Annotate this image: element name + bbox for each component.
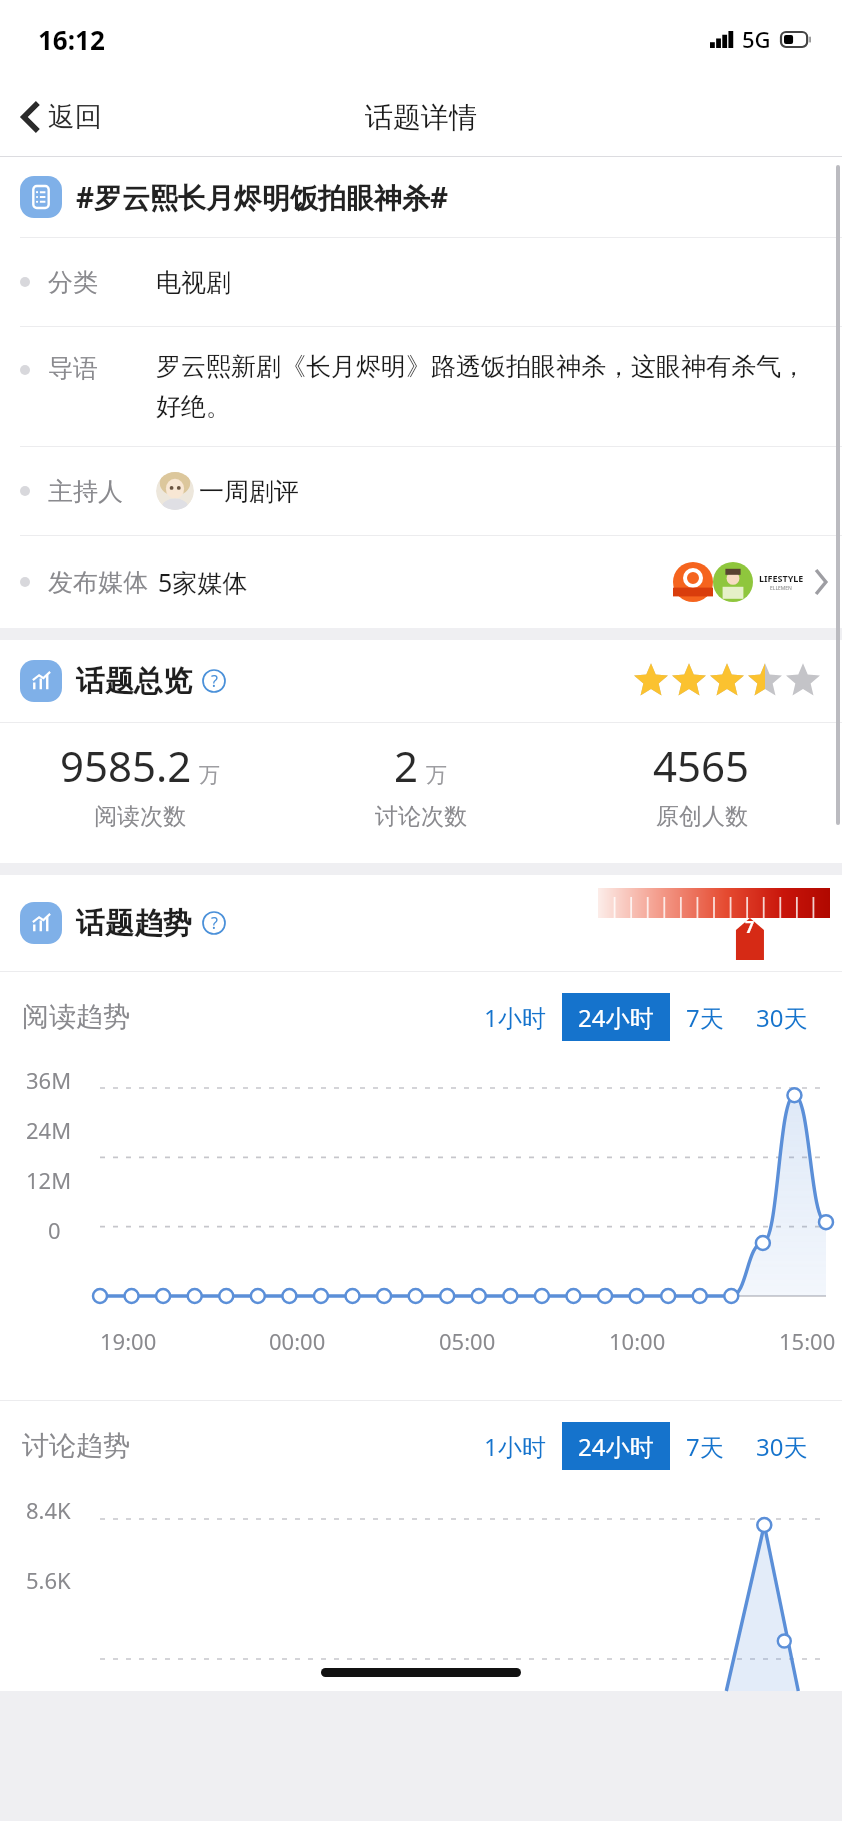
button[interactable]: 帮助说明 — [202, 669, 226, 693]
button[interactable]: 主持人 — [0, 447, 842, 535]
staticText: 主持人 — [48, 476, 123, 507]
staticText: ? — [211, 670, 218, 692]
staticText: 00:00 — [269, 1326, 326, 1356]
button[interactable]: 24小时 — [562, 993, 670, 1041]
button[interactable]: #罗云熙长月烬明饭拍眼神杀# — [0, 157, 842, 237]
staticText: 2 — [394, 737, 419, 794]
staticText: 5家媒体 — [158, 565, 248, 599]
staticText: 30天 — [756, 1001, 808, 1034]
button[interactable]: 7天 — [670, 1422, 740, 1470]
button[interactable]: 30天 — [740, 993, 824, 1041]
staticText: 罗云熙新剧《长月烬明》路透饭拍眼神杀，这眼神有杀气，好绝。 — [156, 351, 820, 422]
staticText: 话题趋势 — [76, 905, 192, 942]
staticText: #罗云熙长月烬明饭拍眼神杀# — [76, 178, 449, 216]
staticText: 5G — [742, 24, 771, 54]
staticText: 9585.2 — [60, 737, 192, 794]
staticText: ? — [211, 912, 218, 934]
staticText: 阅读趋势 — [22, 1000, 130, 1034]
button[interactable]: 30天 — [740, 1422, 824, 1470]
staticText: 24M — [26, 1115, 72, 1145]
button[interactable]: 帮助说明 — [202, 911, 226, 935]
staticText: 分类 — [48, 267, 98, 298]
button[interactable]: 导语 — [0, 327, 842, 446]
button[interactable]: 话题总览 — [0, 640, 842, 722]
staticText: 原创人数 — [656, 802, 748, 831]
staticText: ELLEMEN — [770, 585, 792, 592]
staticText: 24小时 — [578, 1001, 654, 1034]
staticText: 万 — [426, 762, 447, 788]
button[interactable]: 7天 — [670, 993, 740, 1041]
staticText: 发布媒体 — [48, 567, 148, 598]
staticText: 7天 — [686, 1430, 724, 1463]
staticText: 05:00 — [439, 1326, 496, 1356]
staticText: 7天 — [686, 1001, 724, 1034]
staticText: 1小时 — [484, 1430, 546, 1463]
staticText: 1小时 — [484, 1001, 546, 1034]
staticText: 12M — [26, 1165, 72, 1195]
staticText: 10:00 — [609, 1326, 666, 1356]
button[interactable]: 分类 — [0, 238, 842, 326]
staticText: 阅读次数 — [94, 802, 186, 831]
button[interactable]: 1小时 — [468, 993, 562, 1041]
staticText: 一周剧评 — [199, 476, 299, 507]
button[interactable]: 1小时 — [468, 1422, 562, 1470]
staticText: 7 — [745, 916, 755, 938]
staticText: 话题总览 — [76, 663, 192, 700]
button[interactable]: 24小时 — [562, 1422, 670, 1470]
staticText: 16:12 — [38, 22, 105, 57]
staticText: 讨论次数 — [375, 802, 467, 831]
staticText: 8.4K — [26, 1495, 71, 1525]
other: 查看媒体 — [814, 569, 828, 595]
staticText: 24小时 — [578, 1430, 654, 1463]
staticText: LIFESTYLE — [759, 572, 804, 584]
staticText: 5.6K — [26, 1565, 71, 1595]
staticText: 36M — [26, 1065, 72, 1095]
staticText: 话题详情 — [365, 100, 477, 135]
staticText: 导语 — [48, 353, 98, 384]
staticText: 电视剧 — [156, 267, 231, 298]
staticText: 返回 — [48, 100, 102, 134]
staticText: 19:00 — [100, 1326, 157, 1356]
button[interactable]: 返回 — [12, 92, 112, 142]
button[interactable]: 发布媒体 — [0, 536, 842, 628]
button[interactable]: 话题趋势 — [0, 875, 842, 971]
staticText: 30天 — [756, 1430, 808, 1463]
staticText: 0 — [48, 1215, 61, 1245]
staticText: 万 — [199, 762, 220, 788]
staticText: 4565 — [653, 737, 750, 794]
staticText: 讨论趋势 — [22, 1429, 130, 1463]
staticText: 15:00 — [779, 1326, 836, 1356]
